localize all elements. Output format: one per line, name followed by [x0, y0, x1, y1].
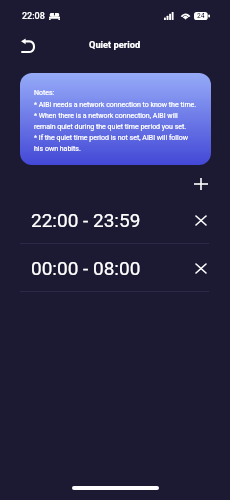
button[interactable]: Add quiet period	[189, 172, 212, 195]
staticText: Notes: * AIBI needs a network connection…	[34, 89, 197, 153]
staticText: 24	[197, 12, 205, 20]
button[interactable]: 00:00 - 08:00	[0, 244, 230, 291]
staticText: 22:08	[22, 11, 45, 22]
button[interactable]: Delete	[189, 256, 213, 280]
button[interactable]: Back	[13, 33, 42, 59]
button[interactable]: Delete	[189, 208, 213, 232]
button[interactable]: 22:00 - 23:59	[0, 196, 230, 243]
staticText: Quiet period	[89, 39, 141, 50]
staticText: 22:00 - 23:59	[31, 209, 141, 231]
staticText: 00:00 - 08:00	[31, 257, 141, 279]
